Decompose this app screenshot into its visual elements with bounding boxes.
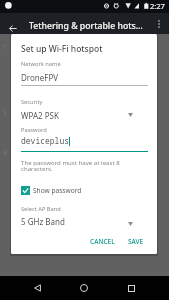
button[interactable]: SAVE	[125, 235, 147, 248]
button[interactable]: Home	[72, 276, 96, 300]
staticText: Select AP Band	[21, 205, 61, 213]
button[interactable]: CANCEL	[87, 235, 118, 248]
staticText: Tethering & portable hots…	[29, 20, 143, 32]
staticText: deviceplus	[21, 135, 69, 146]
staticText: Set up Wi-Fi hotspot	[21, 43, 103, 55]
staticText: Network name	[21, 60, 61, 68]
staticText: WPA2 PSK	[21, 110, 59, 121]
staticText: Security	[21, 98, 43, 106]
button[interactable]: More options	[148, 13, 169, 34]
staticText: 5 GHz Band	[21, 216, 65, 227]
button[interactable]: Show password	[21, 186, 82, 195]
button[interactable]: Select AP Band	[125, 219, 135, 228]
button[interactable]: Back	[25, 276, 49, 300]
staticText: S	[3, 108, 7, 118]
staticText: B	[3, 148, 8, 158]
button[interactable]: Navigate up	[2, 18, 23, 39]
staticText: Password	[21, 126, 47, 134]
button[interactable]: Security	[125, 110, 135, 119]
staticText: Show password	[33, 186, 82, 195]
staticText: 2:27	[150, 1, 165, 11]
staticText: SAVE	[128, 237, 144, 246]
staticText: DroneFPV	[21, 72, 59, 83]
staticText: CANCEL	[90, 237, 115, 246]
button[interactable]: Recent apps	[119, 276, 143, 300]
staticText: The password must have at least 8 charac…	[21, 158, 148, 173]
